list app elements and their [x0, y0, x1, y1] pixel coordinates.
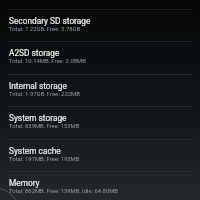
staticText: Internal storage [9, 81, 67, 91]
staticText: A2SD storage [9, 48, 60, 58]
staticText: Memory [9, 178, 40, 188]
staticText: Total: 839MB, Free: 153MB [9, 123, 80, 130]
staticText: Total: 1.97GB, Free: 222MB [9, 91, 80, 98]
button[interactable]: System cache [0, 139, 200, 172]
staticText: System cache [9, 146, 61, 156]
button[interactable]: Secondary SD storage [0, 9, 200, 42]
button[interactable]: A2SD storage [0, 41, 200, 74]
staticText: Total: 862MB, Free: 139MB, Idle: 64.80MB [9, 188, 119, 195]
staticText: System storage [9, 113, 67, 123]
button[interactable]: System storage [0, 106, 200, 139]
button[interactable]: Memory [0, 171, 200, 200]
staticText: Total: 7.22GB, Free: 5.78GB [9, 26, 81, 33]
staticText: Total: 10.14MB, Free: 2.08MB [9, 58, 86, 65]
staticText: Secondary SD storage [9, 16, 91, 26]
staticText: Total: 197MB, Free: 193MB [9, 156, 80, 163]
button[interactable]: Internal storage [0, 74, 200, 107]
